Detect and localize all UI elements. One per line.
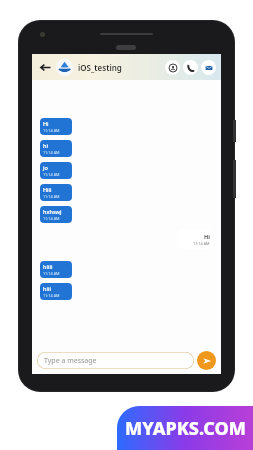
button[interactable]: Call: [183, 60, 198, 75]
staticText: 11:14 AM: [43, 216, 60, 221]
staticText: 11:14 AM: [43, 172, 60, 177]
staticText: hxhswj: [43, 208, 62, 215]
button[interactable]: Type a message: [37, 352, 194, 369]
button[interactable]: Send: [197, 351, 216, 370]
button[interactable]: hiii: [40, 283, 72, 300]
staticText: Type a message: [44, 356, 97, 366]
button[interactable]: Hiii: [40, 184, 72, 201]
button[interactable]: Video call: [201, 60, 216, 75]
staticText: 11:14 AM: [43, 194, 60, 199]
staticText: 11:14 AM: [193, 241, 210, 246]
button[interactable]: hxhswj: [40, 206, 72, 223]
button[interactable]: hiiii: [40, 261, 72, 278]
staticText: MYAPKS.COM: [125, 416, 246, 441]
button[interactable]: Hi: [40, 118, 72, 135]
button[interactable]: Hi: [177, 230, 213, 249]
staticText: hi: [43, 142, 48, 149]
staticText: hiiii: [43, 263, 53, 270]
staticText: jo: [43, 164, 48, 171]
staticText: Hi: [204, 233, 210, 240]
button[interactable]: Back: [36, 58, 54, 76]
button[interactable]: Contact info: [165, 60, 180, 75]
staticText: Hiii: [43, 186, 52, 193]
staticText: iOS_testing: [78, 62, 122, 73]
button[interactable]: jo: [40, 162, 72, 179]
staticText: 11:14 AM: [43, 271, 60, 276]
button[interactable]: hi: [40, 140, 72, 157]
staticText: 11:14 AM: [43, 150, 60, 155]
staticText: 11:14 AM: [43, 293, 60, 298]
staticText: 11:14 AM: [43, 128, 60, 133]
button[interactable]: Profile picture: [56, 59, 73, 76]
staticText: Hi: [43, 120, 49, 127]
staticText: hiii: [43, 285, 51, 292]
